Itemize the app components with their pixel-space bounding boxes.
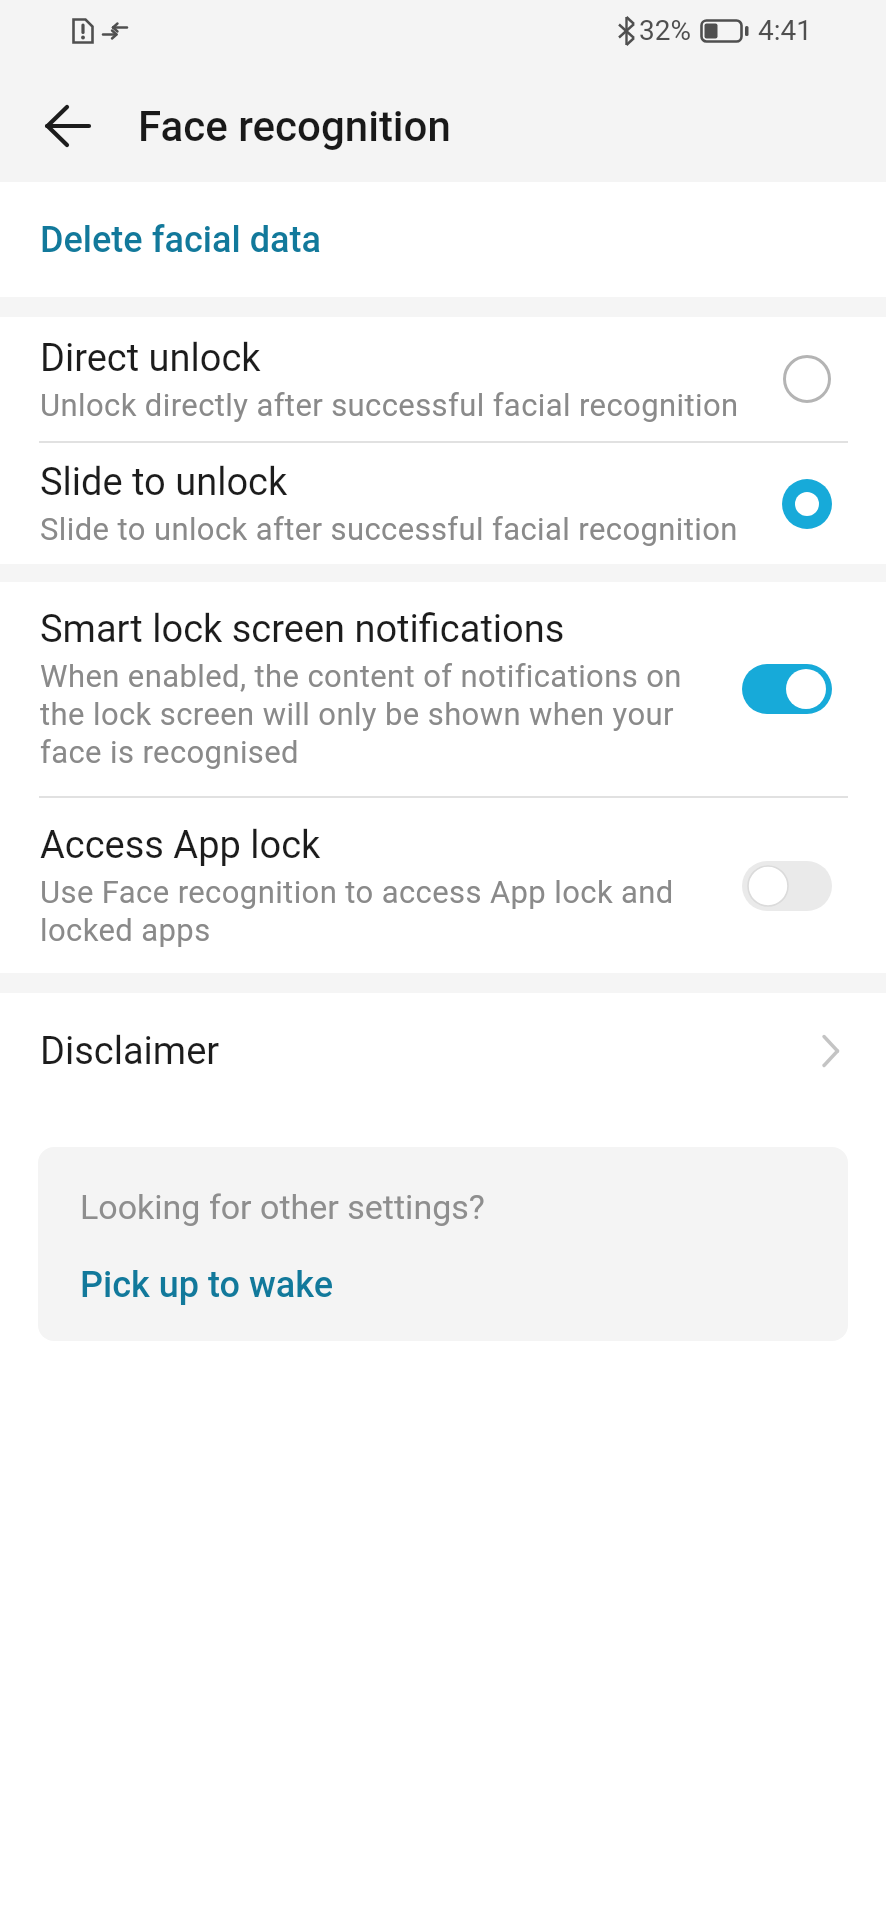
staticText: Use Face recognition to access App lock … bbox=[40, 874, 674, 949]
staticText: Slide to unlock bbox=[40, 460, 288, 505]
staticText: Unlock directly after successful facial … bbox=[40, 387, 739, 423]
button[interactable] bbox=[742, 861, 832, 911]
staticText: Smart lock screen notifications bbox=[40, 607, 565, 652]
staticText: When enabled, the content of notificatio… bbox=[40, 658, 682, 771]
button[interactable] bbox=[46, 104, 90, 148]
staticText: Slide to unlock after successful facial … bbox=[40, 511, 738, 547]
button[interactable]: Access App lock bbox=[0, 798, 886, 973]
button[interactable]: Delete facial data bbox=[0, 182, 886, 297]
staticText: Direct unlock bbox=[40, 336, 261, 381]
staticText: Disclaimer bbox=[40, 1029, 220, 1074]
staticText: Looking for other settings? bbox=[80, 1187, 485, 1227]
staticText: Delete facial data bbox=[40, 219, 321, 261]
button[interactable]: Direct unlock bbox=[0, 317, 886, 441]
staticText: 4:41 bbox=[758, 14, 812, 47]
staticText: Access App lock bbox=[40, 823, 321, 868]
staticText: Pick up to wake bbox=[80, 1264, 334, 1306]
button[interactable]: Smart lock screen notifications bbox=[0, 582, 886, 796]
button[interactable]: Pick up to wake bbox=[80, 1264, 334, 1306]
button[interactable]: Slide to unlock bbox=[0, 443, 886, 564]
button[interactable]: Disclaimer bbox=[0, 993, 886, 1109]
staticText: 32% bbox=[639, 14, 691, 47]
button[interactable] bbox=[742, 664, 832, 714]
staticText: Face recognition bbox=[138, 102, 451, 151]
